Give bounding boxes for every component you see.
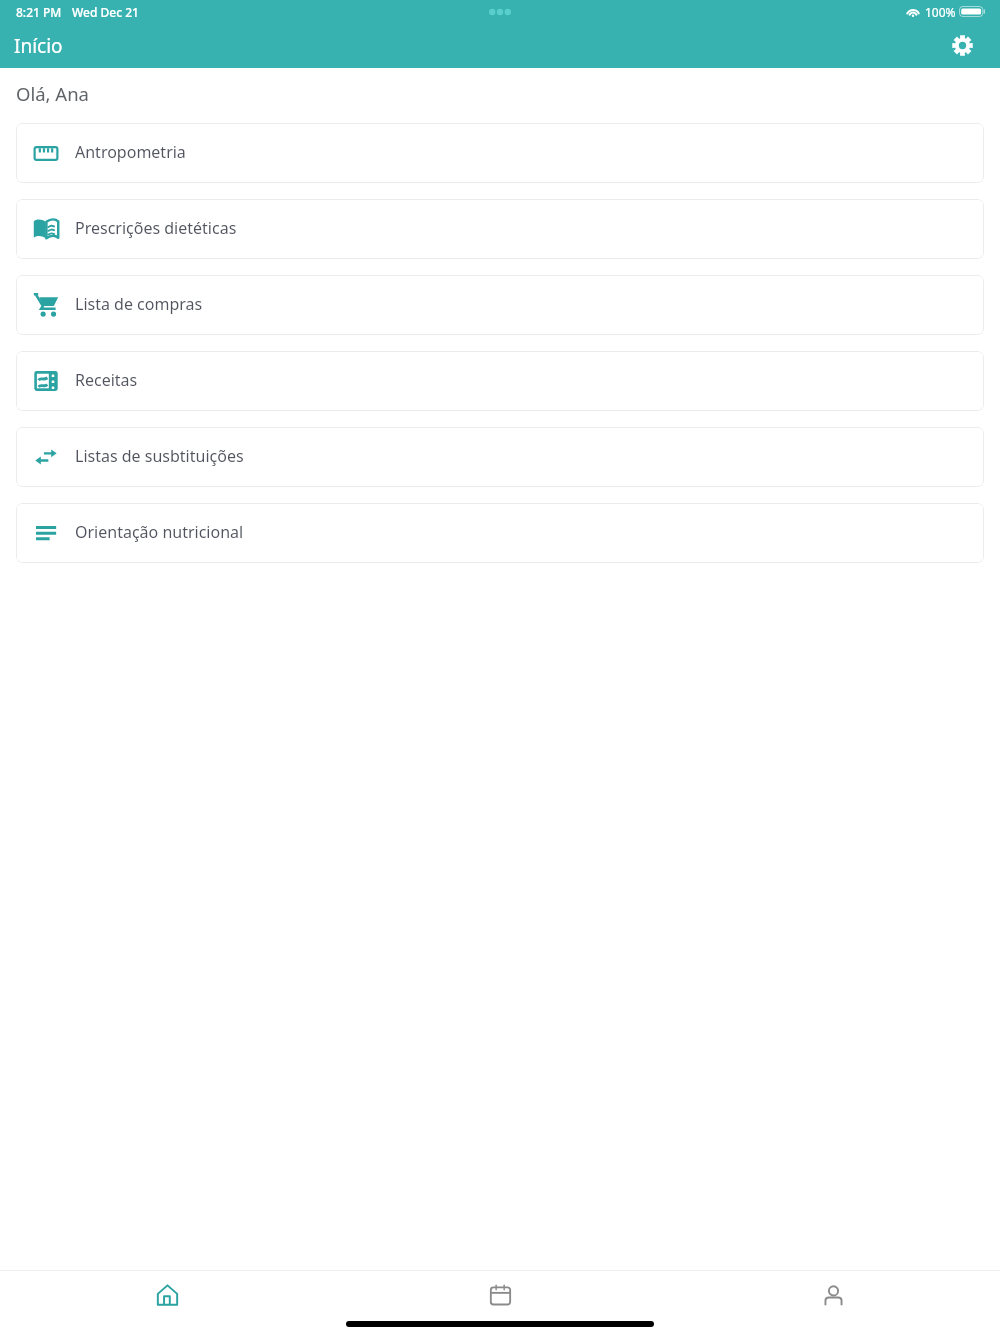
button[interactable]: Calendar xyxy=(334,1271,667,1320)
staticText: Receitas xyxy=(75,369,138,391)
button[interactable]: Profile xyxy=(667,1271,1000,1320)
button[interactable]: Settings xyxy=(945,28,979,62)
staticText: Prescrições dietéticas xyxy=(75,217,237,239)
button[interactable]: Home xyxy=(0,1271,334,1320)
staticText: Início xyxy=(14,33,63,59)
staticText: Orientação nutricional xyxy=(75,521,244,543)
staticText: Lista de compras xyxy=(75,293,203,315)
staticText: Olá, Ana xyxy=(16,81,90,106)
staticText: Listas de susbtituições xyxy=(75,445,244,467)
button[interactable]: Antropometria xyxy=(16,123,984,183)
button[interactable]: Prescrições dietéticas xyxy=(16,199,984,259)
button[interactable]: Listas de susbtituições xyxy=(16,427,984,487)
staticText: 100% xyxy=(925,4,956,20)
button[interactable]: Orientação nutricional xyxy=(16,503,984,563)
staticText: 8:21 PM xyxy=(16,4,62,20)
button[interactable]: Receitas xyxy=(16,351,984,411)
button[interactable]: Lista de compras xyxy=(16,275,984,335)
staticText: Antropometria xyxy=(75,141,186,163)
staticText: Wed Dec 21 xyxy=(72,4,139,20)
